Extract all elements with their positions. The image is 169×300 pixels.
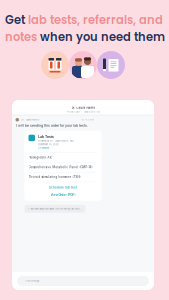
- staticText: Dr. Laura Harris: [71, 106, 94, 109]
- staticText: when you need them: [40, 29, 165, 45]
- staticText: Dr. Laura Harris: [21, 118, 39, 121]
- staticText: lab tests, referrals, and: [28, 12, 163, 28]
- staticText: 3 Samples: [38, 146, 49, 149]
- staticText: Thyroid stimulating hormone (TSH): [28, 175, 80, 179]
- staticText: I will be sending this order for your la…: [16, 123, 88, 128]
- staticText: December 14, 2023: [38, 143, 58, 146]
- staticText: If you have questions about the followin…: [27, 207, 82, 210]
- staticText: 10:42 AM: [81, 118, 93, 121]
- staticText: Send message: [25, 279, 39, 282]
- staticText: Ordered by Dr. Laura Harris, MD: [38, 139, 74, 142]
- staticText: Lab Tests: [38, 135, 54, 139]
- staticText: View Order (PDF): [50, 193, 75, 197]
- staticText: Comprehensive Metabolic Panel (CMP-14): [28, 166, 92, 169]
- staticText: notes: [5, 29, 37, 45]
- staticText: Get: [5, 12, 25, 28]
- staticText: Schedule lab test: [49, 186, 77, 189]
- staticText: Hemoglobin A1c: [28, 156, 52, 159]
- staticText: Primary care · Board certified: [66, 110, 99, 113]
